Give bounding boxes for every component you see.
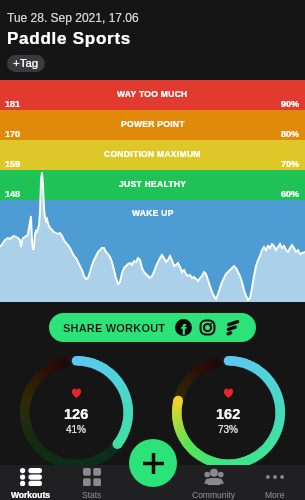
staticText: 80%: [281, 129, 300, 139]
staticText: CONDITION MAXIMUM: [104, 149, 201, 158]
staticText: SHARE WORKOUT: [63, 322, 166, 334]
staticText: 60%: [281, 189, 300, 199]
button[interactable]: SHARE WORKOUT: [49, 313, 256, 342]
staticText: WAY TOO MUCH: [117, 89, 188, 98]
staticText: Stats: [82, 490, 102, 499]
staticText: JUST HEALTHY: [119, 179, 187, 188]
staticText: +Tag: [13, 57, 39, 70]
staticText: 159: [5, 159, 21, 169]
staticText: Community: [192, 490, 235, 499]
staticText: 181: [5, 99, 21, 109]
other: Share on Instagram: [199, 319, 216, 336]
staticText: 126: [64, 406, 89, 422]
other: Share on Facebook: [175, 319, 192, 336]
staticText: Workouts: [11, 490, 51, 499]
staticText: Paddle Sports: [7, 29, 132, 48]
staticText: 73%: [218, 424, 239, 435]
staticText: POWER POINT: [121, 119, 185, 128]
staticText: Tue 28. Sep 2021, 17.06: [7, 11, 139, 24]
staticText: 170: [5, 129, 21, 139]
staticText: 162: [216, 406, 241, 422]
other: Share on Strava: [223, 319, 240, 336]
button[interactable]: Workouts: [0, 465, 61, 500]
button[interactable]: Community: [183, 465, 244, 500]
staticText: 70%: [281, 159, 300, 169]
button[interactable]: +Tag: [7, 55, 45, 72]
button[interactable]: More: [244, 465, 305, 500]
button[interactable]: Add workout: [129, 439, 177, 487]
staticText: 148: [5, 189, 21, 199]
staticText: More: [265, 490, 285, 499]
staticText: 41%: [66, 424, 87, 435]
button[interactable]: Stats: [61, 465, 122, 500]
staticText: 90%: [281, 99, 300, 109]
staticText: WAKE UP: [132, 208, 174, 217]
